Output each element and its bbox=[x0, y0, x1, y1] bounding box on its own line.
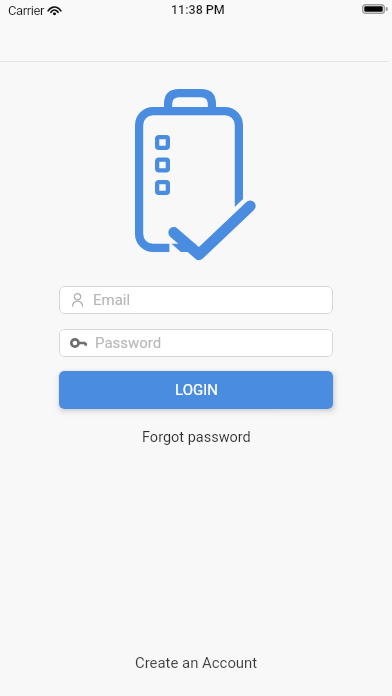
staticText: Forgot password bbox=[142, 429, 251, 446]
staticText: 11:38 PM bbox=[171, 2, 225, 17]
staticText: Carrier bbox=[8, 3, 45, 18]
staticText: Create an Account bbox=[135, 654, 258, 671]
staticText: Password bbox=[95, 334, 162, 352]
button[interactable]: Email bbox=[59, 286, 333, 314]
other: Battery full bbox=[362, 4, 388, 14]
staticText: LOGIN bbox=[175, 381, 218, 399]
button[interactable]: LOGIN bbox=[59, 371, 333, 409]
staticText: Email bbox=[93, 291, 131, 309]
button[interactable]: Create an Account bbox=[129, 652, 264, 673]
button[interactable]: Password bbox=[59, 329, 333, 357]
other: Wi-Fi bbox=[47, 5, 62, 16]
button[interactable]: Forgot password bbox=[136, 427, 257, 448]
